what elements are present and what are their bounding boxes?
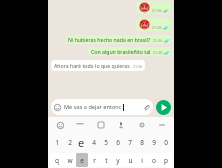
button[interactable]: t bbox=[100, 153, 112, 167]
staticText: 2 bbox=[68, 138, 72, 147]
staticText: o bbox=[152, 156, 156, 165]
button[interactable]: Con algun brasileñito tal bbox=[88, 47, 171, 56]
staticText: u bbox=[128, 156, 133, 165]
button[interactable]: 9 bbox=[148, 133, 160, 152]
button[interactable]: 1 bbox=[50, 133, 63, 152]
button[interactable]: 0 bbox=[160, 133, 172, 152]
staticText: 7 bbox=[128, 138, 132, 147]
button[interactable]: Voice input bbox=[115, 119, 127, 131]
button[interactable]: p bbox=[160, 153, 172, 167]
staticText: 1 bbox=[55, 138, 59, 147]
other: Emoji bbox=[54, 104, 61, 111]
staticText: 6 bbox=[116, 138, 120, 147]
button[interactable]: More bbox=[156, 119, 168, 131]
button[interactable] bbox=[76, 133, 88, 152]
button[interactable]: y bbox=[112, 153, 124, 167]
button[interactable]: Ahora haré todo lo que quieras bbox=[51, 60, 145, 71]
button[interactable]: Ni hubieras hecho nada en brasil? bbox=[65, 35, 171, 44]
staticText: 21:36 bbox=[153, 50, 163, 55]
staticText: 8 bbox=[140, 138, 144, 147]
button[interactable]: u bbox=[124, 153, 136, 167]
button[interactable]: i bbox=[136, 153, 148, 167]
staticText: Con algun brasileñito tal bbox=[91, 48, 151, 55]
button[interactable]: w bbox=[63, 153, 76, 167]
staticText: t bbox=[105, 156, 108, 165]
button[interactable]: 21:36 bbox=[136, 1, 171, 14]
button[interactable]: 8 bbox=[136, 133, 148, 152]
staticText: y bbox=[116, 156, 120, 165]
button[interactable]: 2 bbox=[63, 133, 76, 152]
staticText: p bbox=[164, 156, 168, 165]
button[interactable]: Settings bbox=[136, 119, 148, 131]
button[interactable]: 4 bbox=[88, 133, 100, 152]
staticText: e bbox=[80, 156, 84, 165]
button[interactable]: e bbox=[76, 153, 88, 167]
staticText: 4 bbox=[92, 138, 96, 147]
button[interactable]: 6 bbox=[112, 133, 124, 152]
staticText: q bbox=[55, 156, 59, 165]
button[interactable]: Theme bbox=[74, 119, 86, 131]
button[interactable]: Emoji bbox=[51, 99, 153, 115]
staticText: e bbox=[78, 135, 85, 150]
staticText: 0 bbox=[164, 138, 168, 147]
button[interactable]: Emoji bbox=[54, 119, 66, 131]
button[interactable]: o bbox=[148, 153, 160, 167]
staticText: 21:36 bbox=[152, 25, 162, 30]
staticText: r bbox=[93, 156, 96, 165]
button[interactable]: GIF bbox=[95, 119, 107, 131]
button[interactable]: 7 bbox=[124, 133, 136, 152]
staticText: 5 bbox=[104, 138, 108, 147]
staticText: 21:36 bbox=[152, 8, 162, 13]
button[interactable]: 5 bbox=[100, 133, 112, 152]
other: Attach bbox=[143, 104, 150, 111]
button[interactable]: Send bbox=[156, 100, 171, 115]
staticText: Ahora haré todo lo que quieras bbox=[54, 62, 130, 69]
button[interactable]: 21:36 bbox=[136, 18, 171, 31]
staticText: i bbox=[141, 156, 143, 165]
staticText: Me vas a dejar entonc bbox=[64, 103, 122, 111]
staticText: Ni hubieras hecho nada en brasil? bbox=[68, 36, 151, 43]
staticText: w bbox=[67, 156, 73, 165]
staticText: 21:36 bbox=[133, 64, 143, 69]
button[interactable]: r bbox=[88, 153, 100, 167]
staticText: 9 bbox=[152, 138, 156, 147]
staticText: 21:36 bbox=[153, 38, 163, 43]
button[interactable]: q bbox=[50, 153, 63, 167]
